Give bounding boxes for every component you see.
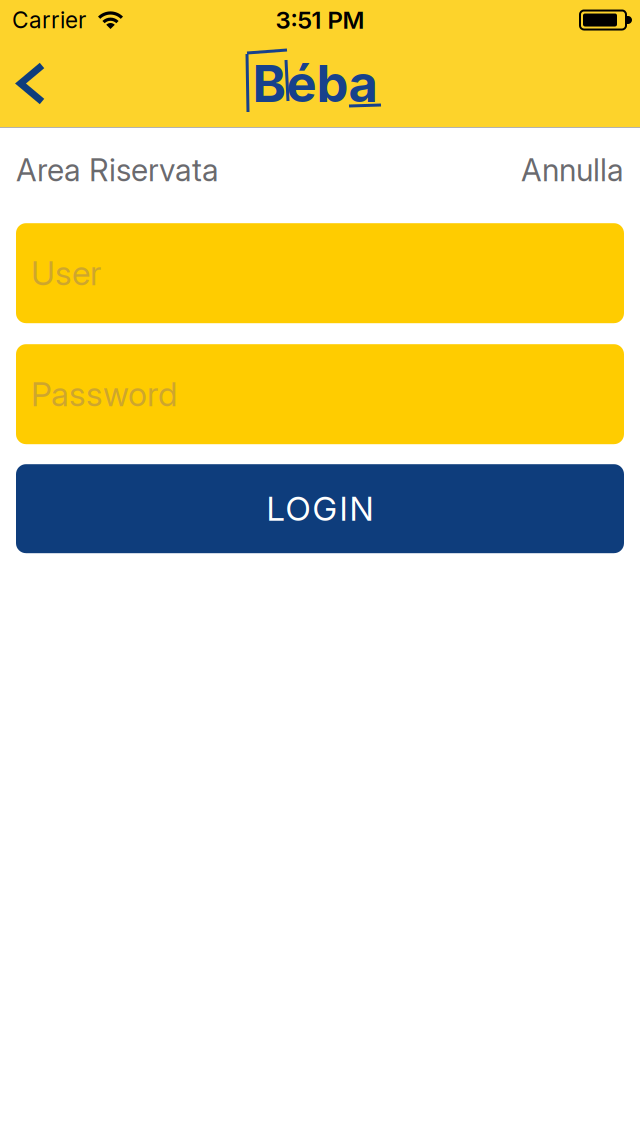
staticText: Béba <box>252 54 377 113</box>
staticText: Area Riservata <box>16 152 219 188</box>
button[interactable]: LOGIN <box>16 464 624 553</box>
button[interactable]: Annulla <box>521 152 624 188</box>
staticText: Carrier <box>12 7 86 33</box>
staticText: User <box>31 253 101 293</box>
button[interactable]: Password <box>16 344 624 444</box>
staticText: Annulla <box>521 152 624 188</box>
button[interactable]: Back <box>0 40 66 127</box>
button[interactable]: User <box>16 223 624 323</box>
staticText: LOGIN <box>266 489 373 528</box>
staticText: 3:51 PM <box>275 6 364 34</box>
staticText: Password <box>31 374 177 414</box>
